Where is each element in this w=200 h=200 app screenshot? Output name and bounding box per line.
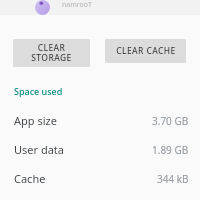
staticText: Cache [14,171,46,186]
button[interactable]: App size [0,106,200,135]
staticText: CLEAR STORAGE [31,42,72,64]
staticText: CLEAR CACHE [116,45,176,57]
staticText: 3.70 GB [152,114,189,128]
staticText: User data [14,142,64,157]
button[interactable]: User data [0,135,200,164]
button[interactable]: CLEAR STORAGE [13,39,90,67]
button[interactable]: CLEAR CACHE [105,39,186,63]
staticText: 344 kB [157,172,189,186]
staticText: App size [14,113,57,128]
staticText: 1.89 GB [152,143,189,157]
staticText: Space used [14,85,63,97]
staticText: namrooT [62,0,92,10]
button[interactable]: Cache [0,164,200,193]
